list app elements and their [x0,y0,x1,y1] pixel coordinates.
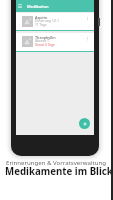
staticText: Abends 1 [35,39,49,43]
staticText: Erinnerungen & Vorratsverwaltung [6,158,107,166]
button[interactable]: Theophyllin [16,33,94,52]
staticText: Aspirin [35,15,48,20]
button[interactable]: Aspirin [16,13,94,31]
button[interactable]: More options [84,15,91,22]
staticText: Medikamente im Blick [5,165,113,178]
button[interactable]: More options [84,35,91,42]
staticText: Vorrat 3 Tage [35,43,55,47]
button[interactable]: Menu [17,3,23,9]
staticText: Dosierung 1-0-1 [35,19,59,23]
staticText: 11 Tage [35,23,47,27]
button[interactable]: Add medication [79,118,90,129]
staticText: Theophyllin [35,35,56,40]
staticText: Medikation [27,4,49,9]
